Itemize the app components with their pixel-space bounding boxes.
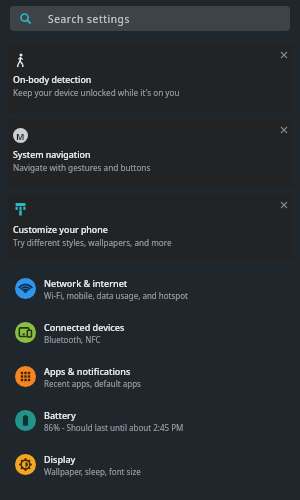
staticText: Recent apps, default apps	[44, 378, 141, 389]
staticText: Keep your device unlocked while it's on …	[13, 87, 180, 98]
staticText: Apps & notifications	[44, 365, 131, 377]
staticText: Connected devices	[44, 321, 125, 333]
staticText: Network & internet	[44, 277, 128, 289]
staticText: System navigation	[13, 149, 91, 161]
staticText: Customize your phone	[13, 224, 108, 236]
staticText: Battery	[44, 409, 76, 421]
button[interactable]	[277, 198, 291, 212]
button[interactable]: Battery	[0, 398, 300, 442]
staticText: On-body detection	[13, 74, 92, 86]
button[interactable]: Network & internet	[0, 266, 300, 310]
staticText: Display	[44, 453, 76, 465]
staticText: Navigate with gestures and buttons	[13, 162, 151, 173]
staticText: Bluetooth, NFC	[44, 334, 101, 345]
button[interactable]	[277, 123, 291, 137]
staticText: Wallpaper, sleep, font size	[44, 466, 141, 477]
staticText: Search settings	[48, 12, 130, 26]
button[interactable]: Connected devices	[0, 310, 300, 354]
button[interactable]: Search settings	[10, 6, 290, 31]
staticText: 86% - Should last until about 2:45 PM	[44, 422, 184, 433]
button[interactable]: Apps & notifications	[0, 354, 300, 398]
staticText: Try different styles, wallpapers, and mo…	[13, 237, 172, 248]
button[interactable]: Display	[0, 442, 300, 486]
button[interactable]: On-body detection	[7, 44, 293, 113]
staticText: M	[16, 130, 25, 142]
button[interactable]: Customize your phone	[7, 194, 293, 260]
staticText: Wi-Fi, mobile, data usage, and hotspot	[44, 290, 188, 301]
button[interactable]	[277, 48, 291, 62]
button[interactable]: M	[7, 119, 293, 188]
